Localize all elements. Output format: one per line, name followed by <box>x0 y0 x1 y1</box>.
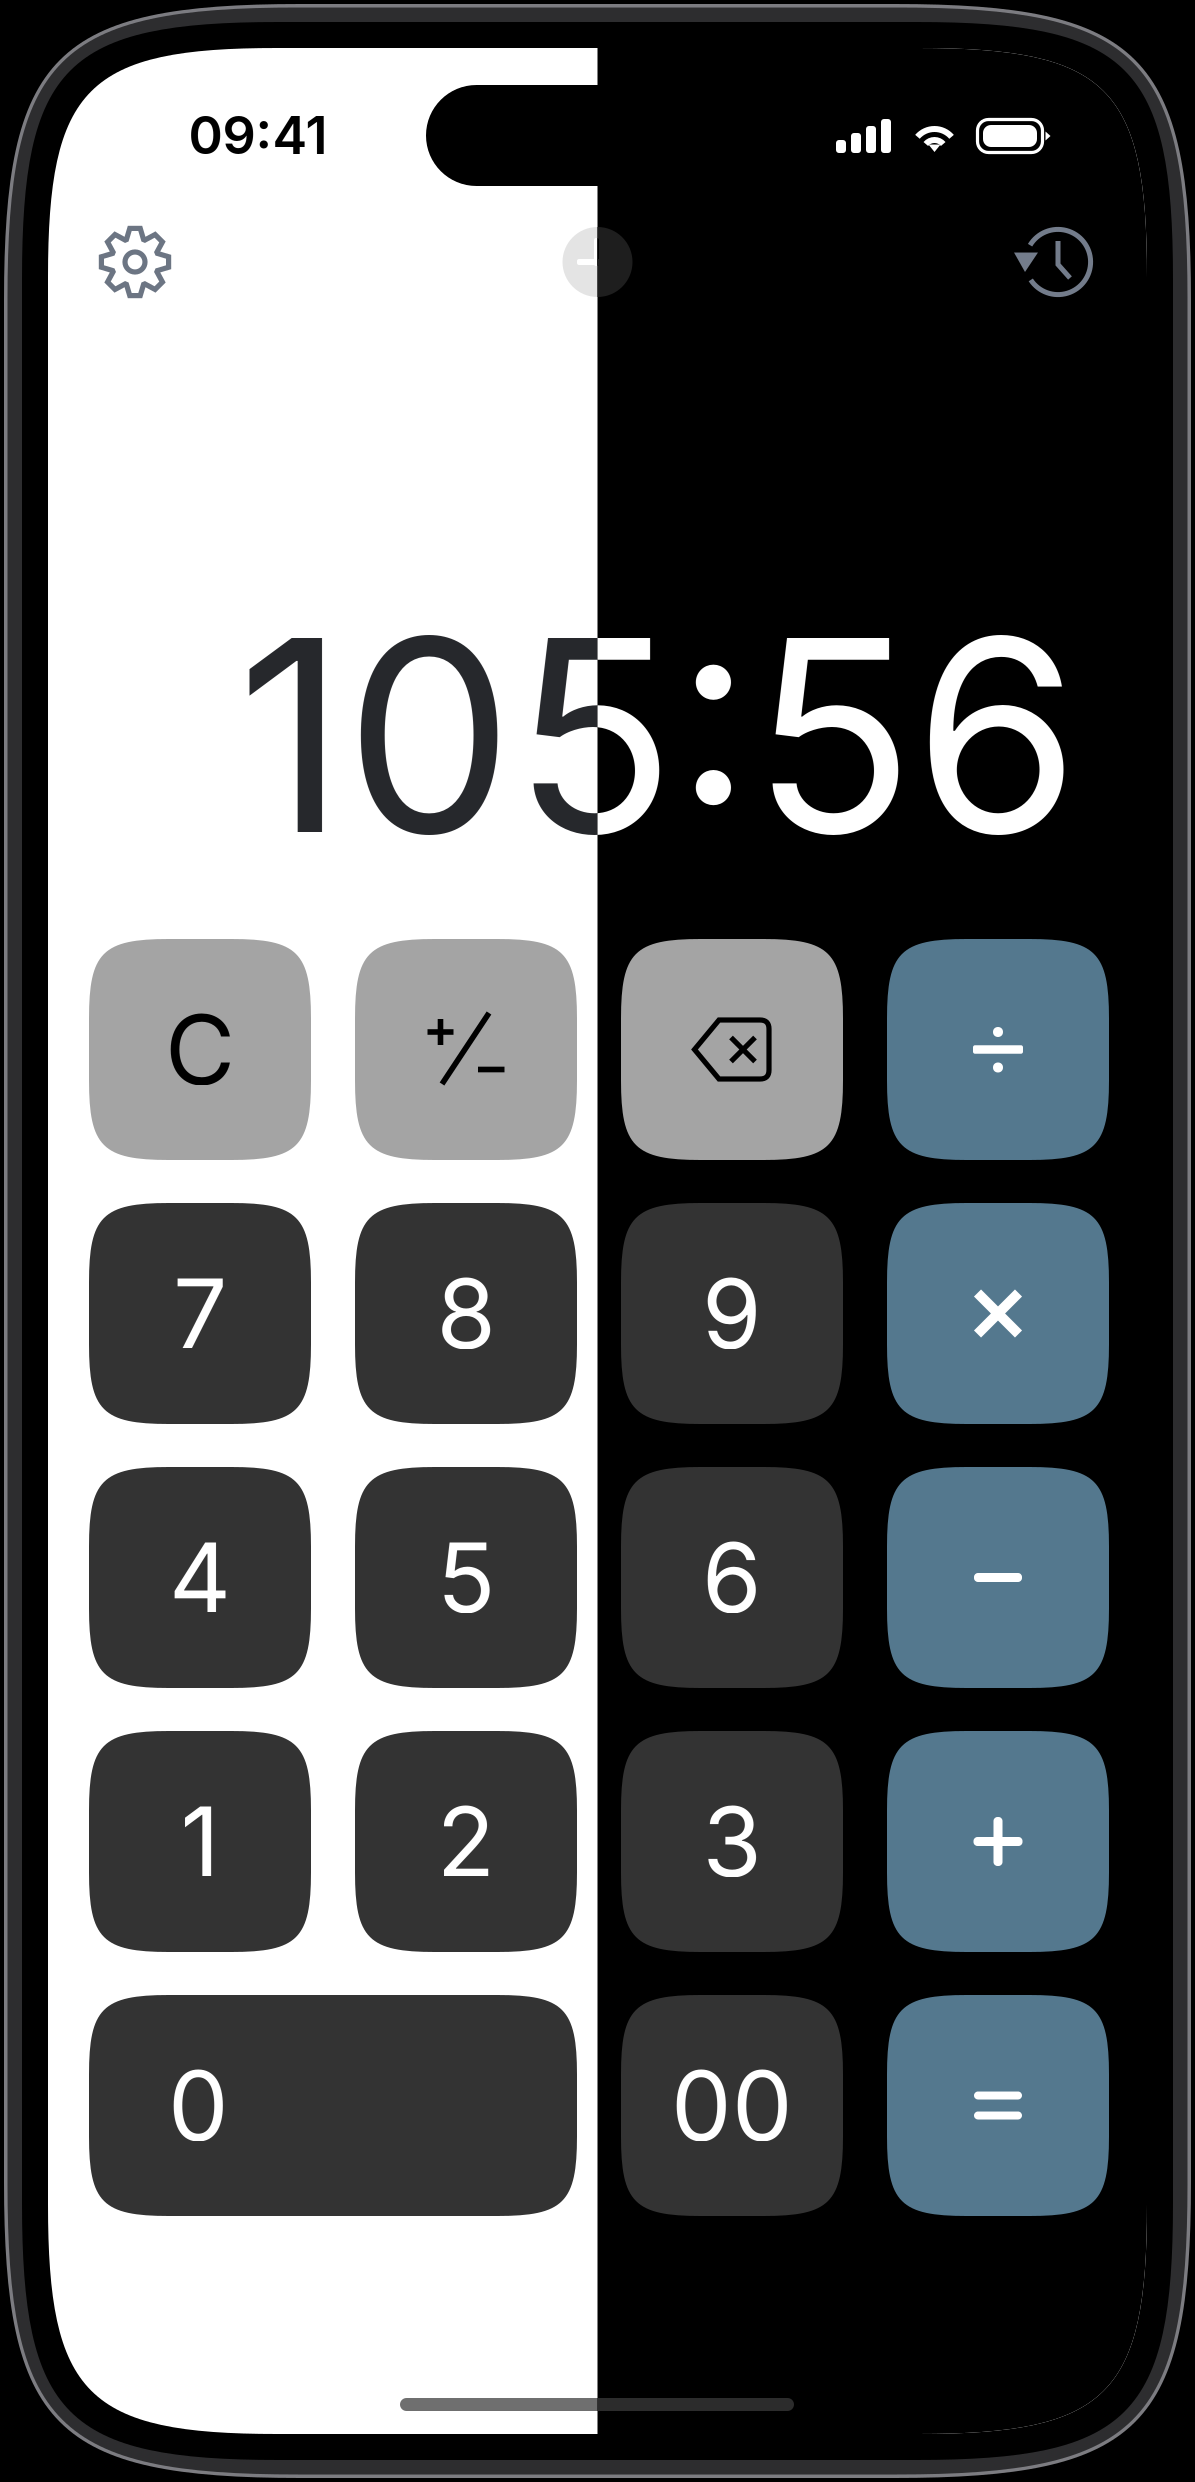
button[interactable]: Backspace <box>621 939 843 1160</box>
button[interactable]: 2 <box>355 1731 577 1952</box>
staticText: 00 <box>671 2047 793 2164</box>
button[interactable]: 2 <box>355 1731 577 1952</box>
button[interactable]: 6 <box>621 1467 843 1688</box>
button[interactable]: 5 <box>355 1467 577 1688</box>
staticText: 2 <box>436 1783 495 1900</box>
staticText: 5 <box>437 1519 495 1636</box>
button[interactable]: 7 <box>89 1203 311 1424</box>
button[interactable]: 7 <box>89 1203 311 1424</box>
button[interactable]: Divide <box>887 939 1109 1160</box>
button[interactable]: Divide <box>887 939 1109 1160</box>
button[interactable]: Equals <box>887 1995 1109 2216</box>
staticText: 09:41 <box>188 103 327 166</box>
button[interactable]: 0 <box>89 1995 577 2216</box>
button[interactable]: 6 <box>621 1467 843 1688</box>
button[interactable]: Settings <box>80 207 190 317</box>
staticText: C <box>165 991 235 1108</box>
staticText: 105:56 <box>237 574 1079 896</box>
button[interactable]: 8 <box>355 1203 577 1424</box>
button[interactable]: 1 <box>89 1731 311 1952</box>
staticText: 3 <box>702 1783 761 1900</box>
staticText: 1 <box>180 1783 219 1900</box>
staticText: 6 <box>702 1519 762 1636</box>
button[interactable]: Clear <box>89 939 311 1160</box>
staticText: 8 <box>436 1255 495 1372</box>
staticText: 4 <box>169 1519 231 1636</box>
button[interactable]: 3 <box>621 1731 843 1952</box>
staticText: 9 <box>702 1255 762 1372</box>
staticText: 0 <box>168 2047 229 2164</box>
staticText: 8 <box>436 1255 495 1372</box>
button[interactable]: History <box>998 207 1108 317</box>
button[interactable]: Backspace <box>621 939 843 1160</box>
button[interactable]: 1 <box>89 1731 311 1952</box>
staticText: 00 <box>671 2047 793 2164</box>
staticText: 5 <box>437 1519 495 1636</box>
staticText: 0 <box>168 2047 229 2164</box>
button[interactable]: 5 <box>355 1467 577 1688</box>
button[interactable]: Minus <box>887 1467 1109 1688</box>
button[interactable]: 4 <box>89 1467 311 1688</box>
button[interactable]: 4 <box>89 1467 311 1688</box>
button[interactable]: Equals <box>887 1995 1109 2216</box>
button[interactable]: Settings <box>80 207 190 317</box>
staticText: C <box>165 991 235 1108</box>
button[interactable]: 9 <box>621 1203 843 1424</box>
button[interactable]: 0 <box>89 1995 577 2216</box>
staticText: 3 <box>702 1783 761 1900</box>
button[interactable]: 8 <box>355 1203 577 1424</box>
button[interactable]: History <box>998 207 1108 317</box>
staticText: 105:56 <box>237 574 1079 896</box>
staticText: 4 <box>169 1519 231 1636</box>
staticText: 7 <box>173 1255 227 1372</box>
button[interactable]: Multiply <box>887 1203 1109 1424</box>
button[interactable]: 3 <box>621 1731 843 1952</box>
button[interactable]: Toggle sign <box>355 939 577 1160</box>
button[interactable]: Double zero <box>621 1995 843 2216</box>
button[interactable]: Minus <box>887 1467 1109 1688</box>
button[interactable]: Plus <box>887 1731 1109 1952</box>
button[interactable]: Multiply <box>887 1203 1109 1424</box>
staticText: 1 <box>180 1783 219 1900</box>
button[interactable]: 9 <box>621 1203 843 1424</box>
staticText: 2 <box>436 1783 495 1900</box>
button[interactable]: Clear <box>89 939 311 1160</box>
button[interactable]: Double zero <box>621 1995 843 2216</box>
staticText: 6 <box>702 1519 762 1636</box>
staticText: 7 <box>173 1255 227 1372</box>
button[interactable]: Plus <box>887 1731 1109 1952</box>
staticText: 09:41 <box>188 103 327 166</box>
button[interactable]: Toggle sign <box>355 939 577 1160</box>
staticText: 9 <box>702 1255 762 1372</box>
